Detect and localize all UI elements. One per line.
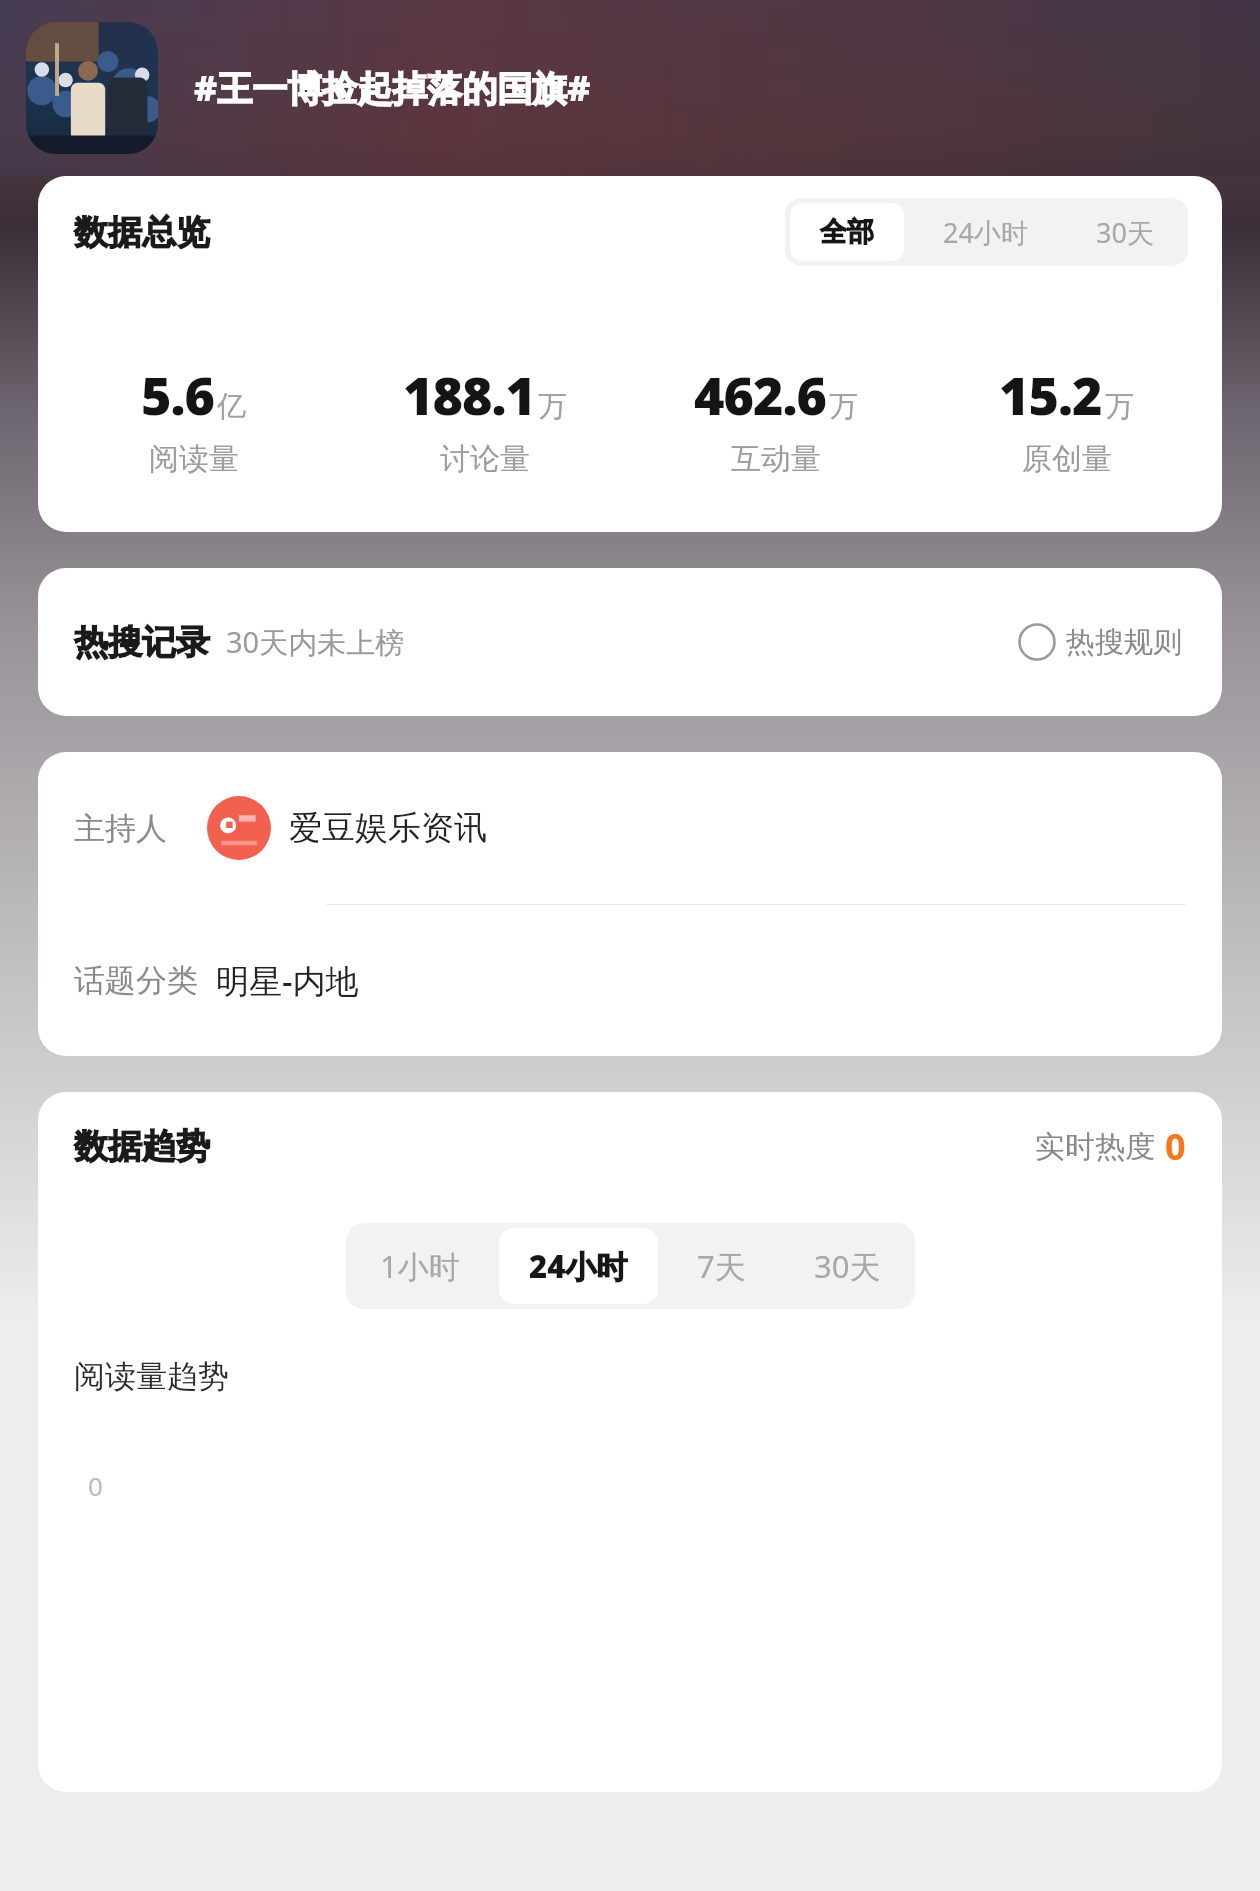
- staticText: 爱豆娱乐资讯: [289, 807, 487, 849]
- button[interactable]: 话题配图: [26, 22, 158, 154]
- button[interactable]: 24小时: [499, 1228, 658, 1304]
- other: 热搜规则说明: [1018, 623, 1056, 661]
- staticText: 万: [538, 388, 567, 425]
- button[interactable]: 462.6: [630, 359, 921, 478]
- button[interactable]: 24小时: [909, 198, 1062, 266]
- button[interactable]: 15.2: [921, 359, 1212, 478]
- button[interactable]: 热搜规则说明: [1014, 617, 1186, 667]
- staticText: 阅读量: [149, 440, 239, 478]
- staticText: 30天: [814, 1245, 881, 1287]
- staticText: 互动量: [731, 440, 821, 478]
- staticText: 明星-内地: [216, 958, 359, 1003]
- staticText: 亿: [217, 388, 246, 425]
- staticText: 数据总览: [74, 211, 210, 254]
- staticText: 30天内未上榜: [226, 622, 405, 662]
- staticText: 热搜规则: [1066, 624, 1182, 661]
- staticText: 热搜记录: [74, 621, 210, 664]
- staticText: 5.6: [141, 359, 214, 430]
- button[interactable]: 7天: [663, 1223, 780, 1309]
- staticText: #王一博捡起掉落的国旗#: [194, 64, 591, 112]
- staticText: 462.6: [694, 359, 826, 430]
- button[interactable]: 主持人: [38, 752, 1222, 904]
- staticText: 15.2: [999, 359, 1102, 430]
- staticText: 0: [1165, 1122, 1186, 1171]
- staticText: 万: [829, 388, 858, 425]
- button[interactable]: 全部: [790, 203, 904, 261]
- staticText: 阅读量趋势: [74, 1357, 229, 1396]
- staticText: 讨论量: [440, 440, 530, 478]
- staticText: 24小时: [529, 1245, 628, 1287]
- button[interactable]: 话题分类: [38, 905, 1222, 1056]
- staticText: 数据趋势: [74, 1125, 210, 1168]
- staticText: 188.1: [403, 359, 535, 430]
- staticText: 7天: [697, 1245, 746, 1287]
- staticText: 1小时: [380, 1245, 460, 1287]
- staticText: 话题分类: [74, 961, 198, 1000]
- staticText: 原创量: [1022, 440, 1112, 478]
- button[interactable]: 30天: [1062, 198, 1188, 266]
- staticText: 24小时: [943, 214, 1028, 251]
- staticText: 主持人: [74, 809, 167, 848]
- staticText: 30天: [1096, 214, 1154, 251]
- button[interactable]: 5.6: [48, 359, 339, 478]
- staticText: 全部: [820, 215, 874, 249]
- button[interactable]: 实时热度: [1035, 1122, 1186, 1171]
- staticText: 0: [88, 1468, 103, 1503]
- button[interactable]: 30天: [780, 1223, 915, 1309]
- staticText: 实时热度: [1035, 1128, 1155, 1166]
- button[interactable]: 188.1: [339, 359, 630, 478]
- staticText: 万: [1105, 388, 1134, 425]
- button[interactable]: 1小时: [346, 1223, 494, 1309]
